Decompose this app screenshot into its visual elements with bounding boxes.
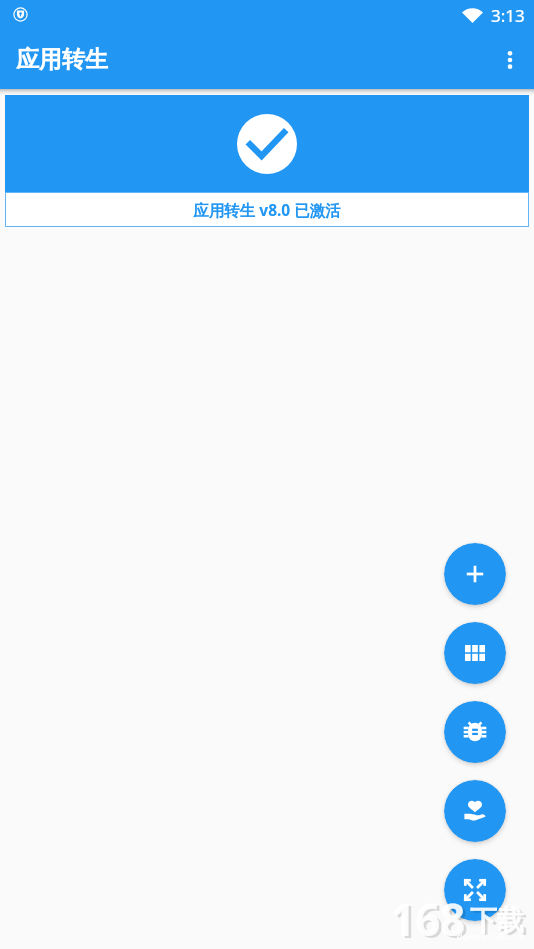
button[interactable]: More options	[486, 36, 534, 84]
staticText: 3:13	[491, 4, 525, 27]
staticText: 168	[393, 890, 469, 949]
staticText: 下载	[473, 905, 527, 940]
staticText: down.it168.com	[457, 930, 525, 942]
staticText: 下载	[470, 903, 524, 938]
button[interactable]: Fullscreen	[444, 859, 506, 921]
button[interactable]: 应用转生 v8.0 已激活	[5, 95, 529, 227]
button[interactable]: Apps	[444, 622, 506, 684]
staticText: 应用转生 v8.0 已激活	[193, 199, 341, 220]
button[interactable]: Donate	[444, 780, 506, 842]
staticText: 168	[390, 888, 466, 949]
staticText: 应用转生	[16, 45, 108, 74]
button[interactable]: Debug	[444, 701, 506, 763]
button[interactable]: Add	[444, 543, 506, 605]
